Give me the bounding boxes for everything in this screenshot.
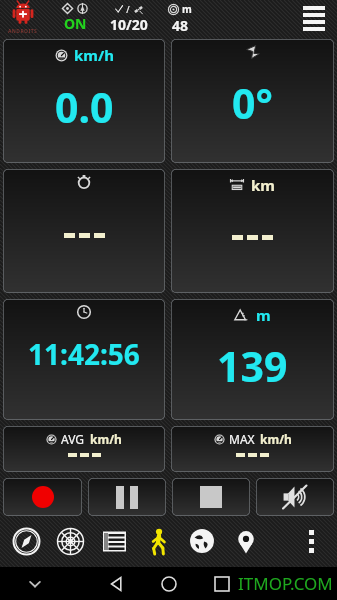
button[interactable]: GPS status: [62, 3, 88, 33]
staticText: ANDROITS: [8, 28, 38, 35]
staticText: km/h: [90, 431, 122, 447]
button[interactable]: Hide keyboard: [20, 569, 50, 599]
button[interactable]: Androits logo: [8, 2, 38, 35]
button[interactable]: Stop: [172, 478, 250, 516]
button[interactable]: m: [171, 299, 334, 420]
staticText: 0.0: [55, 79, 114, 135]
other: Record: [3, 478, 82, 516]
staticText: km/h: [260, 431, 292, 447]
button[interactable]: [3, 169, 165, 293]
button[interactable]: Pause: [88, 478, 166, 516]
button[interactable]: Home: [152, 567, 186, 600]
staticText: 48: [172, 16, 189, 35]
button[interactable]: Record: [3, 478, 82, 516]
button[interactable]: km/h: [3, 39, 165, 163]
staticText: 139: [217, 338, 288, 394]
other: Stop: [172, 478, 250, 516]
button[interactable]: 0°: [171, 39, 334, 163]
other: Pause: [88, 478, 166, 516]
button[interactable]: Satellites in use: [110, 3, 148, 34]
button[interactable]: Trip: [136, 519, 180, 563]
button[interactable]: Waypoints: [224, 519, 268, 563]
staticText: ON: [64, 14, 87, 33]
button[interactable]: More options: [291, 521, 331, 561]
other: Mute: [256, 478, 334, 516]
button[interactable]: Data list: [92, 519, 136, 563]
button[interactable]: Satellite radar: [48, 519, 92, 563]
staticText: km/h: [74, 45, 114, 65]
button[interactable]: MAX: [171, 426, 334, 472]
staticText: m: [256, 305, 271, 325]
button[interactable]: Compass: [4, 519, 48, 563]
staticText: ITMOP.COM: [238, 572, 333, 595]
button[interactable]: Menu: [299, 3, 329, 33]
button[interactable]: km: [171, 169, 334, 293]
button[interactable]: Map: [180, 519, 224, 563]
button[interactable]: 11:42:56: [3, 299, 165, 420]
staticText: m: [182, 2, 192, 16]
staticText: MAX: [229, 431, 255, 447]
staticText: km: [251, 175, 275, 195]
button[interactable]: Accuracy: [168, 2, 192, 35]
staticText: 11:42:56: [28, 335, 140, 373]
staticText: 10/20: [110, 15, 148, 34]
staticText: 0°: [232, 75, 273, 131]
button[interactable]: Recent apps: [205, 567, 239, 600]
button[interactable]: Back: [99, 567, 133, 600]
staticText: /: [124, 3, 133, 15]
button[interactable]: Mute: [256, 478, 334, 516]
button[interactable]: AVG: [3, 426, 165, 472]
staticText: AVG: [61, 431, 85, 447]
